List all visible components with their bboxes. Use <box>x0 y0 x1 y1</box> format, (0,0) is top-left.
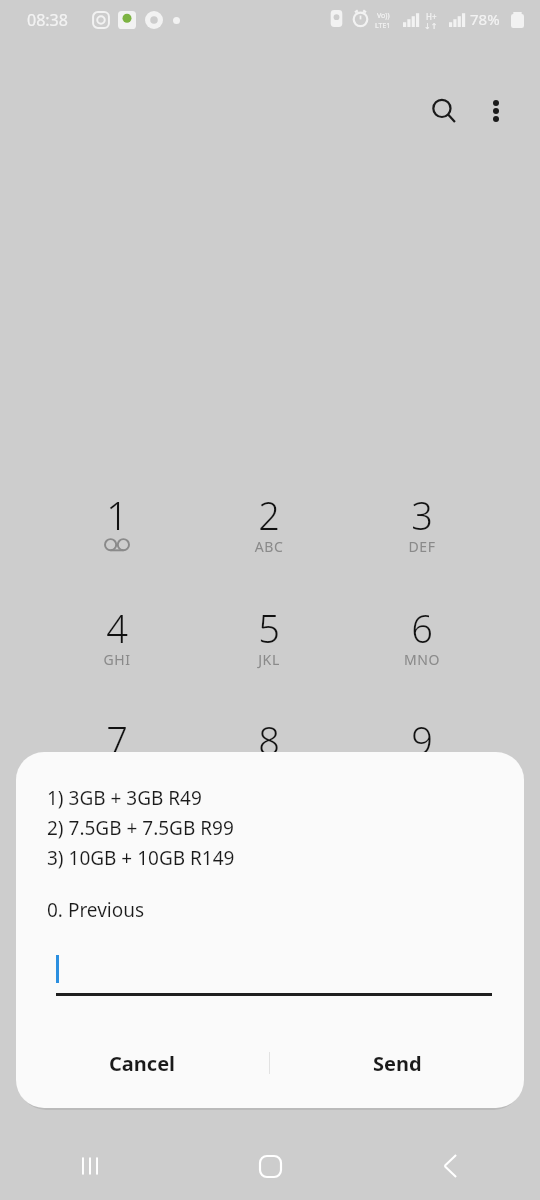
staticText: 9 <box>362 714 482 766</box>
staticText: 7 <box>57 714 177 766</box>
staticText: JKL <box>209 650 329 669</box>
staticText: 5 <box>209 602 329 654</box>
staticText: ↓↑ <box>424 22 438 31</box>
staticText: 3 <box>362 489 482 541</box>
button[interactable]: More options <box>470 85 522 137</box>
staticText: 6 <box>362 602 482 654</box>
staticText: GHI <box>57 650 177 669</box>
staticText: ABC <box>209 537 329 556</box>
staticText: 3) 10GB + 10GB R149 <box>47 845 235 871</box>
button[interactable]: Recent apps <box>0 1132 180 1200</box>
staticText: Cancel <box>109 1050 176 1077</box>
staticText: 0. Previous <box>47 897 145 923</box>
button[interactable]: 6 <box>362 596 482 704</box>
staticText: 2) 7.5GB + 7.5GB R99 <box>47 815 234 841</box>
button[interactable]: Home <box>180 1132 360 1200</box>
staticText: 78% <box>470 9 500 29</box>
staticText: 4 <box>57 602 177 654</box>
staticText: 2 <box>209 489 329 541</box>
staticText: DEF <box>362 537 482 556</box>
staticText: Send <box>373 1050 422 1077</box>
staticText: 1 <box>57 489 177 541</box>
staticText: LTE1 <box>375 21 391 31</box>
button[interactable]: 2 <box>209 483 329 591</box>
staticText: Vo)) <box>377 11 390 21</box>
button[interactable]: 5 <box>209 596 329 704</box>
button[interactable]: Send <box>270 1032 524 1094</box>
staticText: MNO <box>362 650 482 669</box>
button[interactable]: Search <box>418 85 470 137</box>
button[interactable]: Back <box>360 1132 540 1200</box>
staticText: 08:38 <box>27 9 68 31</box>
button[interactable]: 4 <box>57 596 177 704</box>
button[interactable]: 3 <box>362 483 482 591</box>
button[interactable]: Cancel <box>16 1032 269 1094</box>
staticText: 1) 3GB + 3GB R49 <box>47 785 202 811</box>
button[interactable]: 8 <box>209 708 329 816</box>
button[interactable]: 7 <box>57 708 177 816</box>
button[interactable]: 9 <box>362 708 482 816</box>
staticText: H+ <box>426 11 437 22</box>
button[interactable]: 1 <box>57 483 177 591</box>
staticText: 8 <box>209 714 329 766</box>
